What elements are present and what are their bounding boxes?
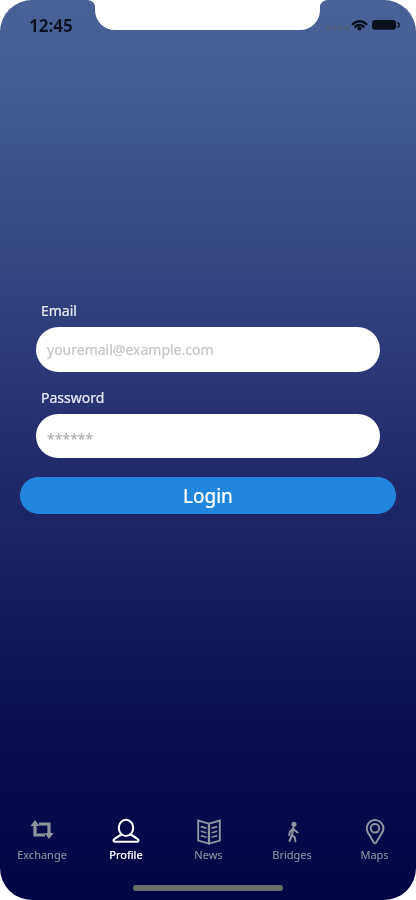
button[interactable]: News xyxy=(167,814,250,862)
staticText: Exchange xyxy=(17,847,67,862)
button[interactable]: Exchange xyxy=(0,814,84,862)
staticText: Email xyxy=(41,301,77,320)
staticText: Password xyxy=(41,388,105,407)
button[interactable]: Login xyxy=(20,477,396,514)
staticText: 12:45 xyxy=(29,14,73,37)
staticText: Bridges xyxy=(272,847,312,862)
staticText: youremail@example.com xyxy=(47,340,214,359)
button[interactable]: youremail@example.com xyxy=(36,327,380,372)
staticText: Login xyxy=(183,483,233,509)
staticText: Profile xyxy=(109,847,143,862)
button[interactable]: ****** xyxy=(36,414,380,458)
button[interactable]: Profile xyxy=(84,814,167,862)
button[interactable]: Bridges xyxy=(250,814,333,862)
staticText: ****** xyxy=(47,429,94,448)
staticText: News xyxy=(194,847,223,862)
staticText: Maps xyxy=(360,847,389,862)
button[interactable]: Maps xyxy=(333,814,416,862)
